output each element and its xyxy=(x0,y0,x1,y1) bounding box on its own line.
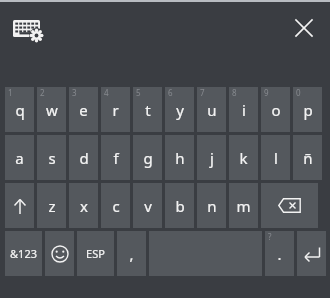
staticText: , xyxy=(129,244,134,264)
staticText: e xyxy=(79,100,88,120)
button[interactable]: k xyxy=(229,135,258,180)
staticText: &123 xyxy=(10,246,37,261)
staticText: n xyxy=(207,196,217,216)
button[interactable]: Backspace xyxy=(261,183,318,228)
staticText: m xyxy=(236,196,251,216)
button[interactable]: f xyxy=(101,135,130,180)
staticText: 6 xyxy=(168,87,173,98)
staticText: 3 xyxy=(72,87,77,98)
button[interactable]: v xyxy=(133,183,162,228)
staticText: 7 xyxy=(200,87,205,98)
staticText: k xyxy=(239,148,248,168)
button[interactable]: ESP xyxy=(77,231,114,276)
staticText: o xyxy=(271,100,281,120)
button[interactable]: Enter xyxy=(297,231,326,276)
staticText: b xyxy=(175,196,185,216)
staticText: a xyxy=(15,148,24,168)
button[interactable]: 2 xyxy=(37,87,66,132)
button[interactable]: h xyxy=(165,135,194,180)
staticText: 9 xyxy=(264,87,269,98)
staticText: 2 xyxy=(40,87,45,98)
button[interactable]: 8 xyxy=(229,87,258,132)
button[interactable]: z xyxy=(37,183,66,228)
button[interactable]: m xyxy=(229,183,258,228)
staticText: 4 xyxy=(104,87,109,98)
button[interactable]: , xyxy=(117,231,146,276)
staticText: g xyxy=(143,148,153,168)
button[interactable]: &123 xyxy=(5,231,42,276)
button[interactable]: Keyboard settings xyxy=(10,15,46,45)
staticText: ñ xyxy=(303,148,313,168)
button[interactable]: ñ xyxy=(293,135,322,180)
button[interactable]: b xyxy=(165,183,194,228)
button[interactable]: 6 xyxy=(165,87,194,132)
button[interactable]: Emoji xyxy=(45,231,74,276)
staticText: w xyxy=(46,100,58,120)
button[interactable]: 4 xyxy=(101,87,130,132)
button[interactable]: x xyxy=(69,183,98,228)
staticText: s xyxy=(48,148,56,168)
button[interactable]: 7 xyxy=(197,87,226,132)
staticText: 0 xyxy=(296,87,301,98)
staticText: c xyxy=(112,196,120,216)
staticText: ? xyxy=(268,231,272,242)
button[interactable]: 1 xyxy=(5,87,34,132)
staticText: 8 xyxy=(232,87,237,98)
staticText: t xyxy=(145,100,151,120)
staticText: ESP xyxy=(86,246,105,261)
button[interactable]: j xyxy=(197,135,226,180)
staticText: i xyxy=(242,100,246,120)
staticText: p xyxy=(303,100,313,120)
button[interactable]: n xyxy=(197,183,226,228)
button[interactable]: 0 xyxy=(293,87,322,132)
staticText: r xyxy=(112,100,119,120)
button[interactable]: s xyxy=(37,135,66,180)
button[interactable]: 9 xyxy=(261,87,290,132)
staticText: . xyxy=(277,244,282,264)
button[interactable]: d xyxy=(69,135,98,180)
staticText: u xyxy=(207,100,217,120)
staticText: 1 xyxy=(8,87,13,98)
button[interactable]: c xyxy=(101,183,130,228)
staticText: h xyxy=(175,148,185,168)
staticText: f xyxy=(113,148,119,168)
staticText: 5 xyxy=(136,87,141,98)
staticText: l xyxy=(274,148,278,168)
button[interactable]: l xyxy=(261,135,290,180)
staticText: x xyxy=(80,196,88,216)
staticText: d xyxy=(79,148,89,168)
button[interactable]: ? xyxy=(265,231,294,276)
button[interactable]: g xyxy=(133,135,162,180)
button[interactable]: Close xyxy=(285,9,323,47)
button[interactable]: Shift xyxy=(5,183,34,228)
staticText: z xyxy=(48,196,56,216)
staticText: y xyxy=(176,100,184,120)
button[interactable]: 5 xyxy=(133,87,162,132)
staticText: q xyxy=(15,100,25,120)
button[interactable]: 3 xyxy=(69,87,98,132)
staticText: v xyxy=(144,196,152,216)
button[interactable]: a xyxy=(5,135,34,180)
staticText: j xyxy=(210,148,214,168)
